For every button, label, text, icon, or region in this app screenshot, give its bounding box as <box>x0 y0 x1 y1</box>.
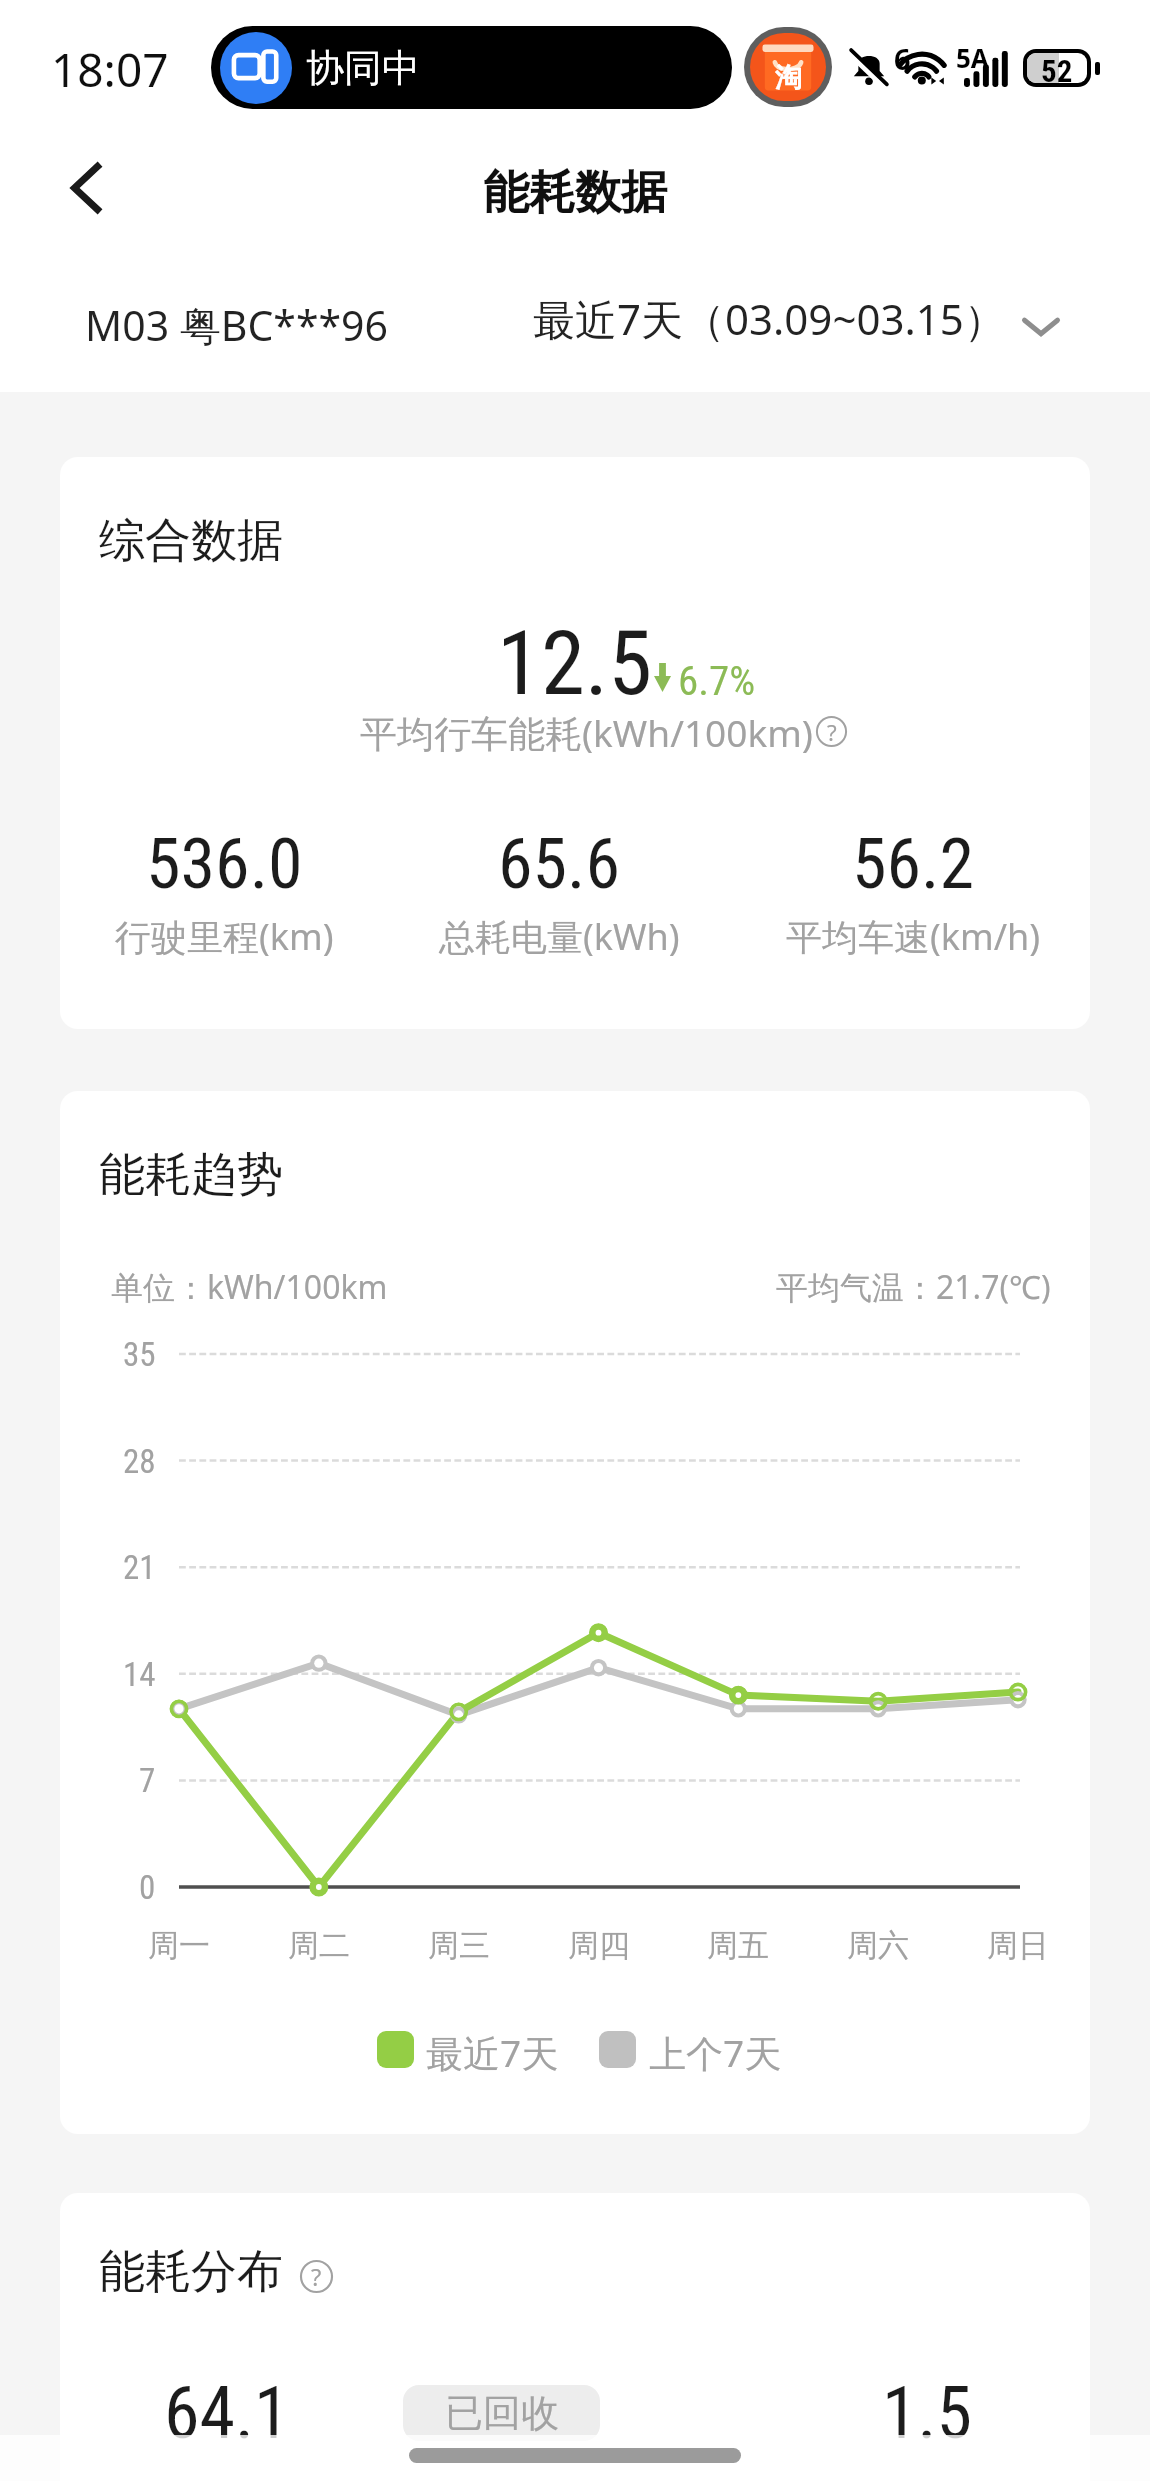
staticText: 5A <box>956 40 989 75</box>
staticText: 平均行车能耗(kWh/100km) <box>360 707 813 758</box>
staticText: 64.1 <box>164 2371 290 2455</box>
staticText: 周二 <box>288 1926 350 1965</box>
staticText: 周五 <box>707 1926 769 1965</box>
staticText: 上个7天 <box>649 2027 782 2078</box>
button[interactable]: Back <box>42 144 130 232</box>
staticText: 平均气温：21.7(℃) <box>776 1265 1051 1309</box>
staticText: 能耗数据 <box>483 164 667 222</box>
staticText: 7 <box>139 1761 156 1800</box>
staticText: ? <box>827 717 837 747</box>
staticText: 12.5 <box>497 611 653 715</box>
staticText: 行驶里程(km) <box>115 912 334 961</box>
staticText: 能耗分布 <box>99 2243 283 2301</box>
staticText: 平均车速(km/h) <box>786 912 1041 961</box>
staticText: 最近7天 <box>426 2027 559 2078</box>
staticText: 总耗电量(kWh) <box>439 912 680 961</box>
staticText: 35 <box>123 1335 156 1374</box>
staticText: 28 <box>123 1442 156 1481</box>
staticText: 0 <box>139 1868 156 1907</box>
staticText: 1.5 <box>882 2371 973 2455</box>
staticText: 综合数据 <box>99 512 283 570</box>
staticText: 周四 <box>568 1926 630 1965</box>
staticText: 52 <box>1041 53 1073 83</box>
button[interactable]: M03 粤BC***96 <box>85 297 388 353</box>
staticText: 最近7天（03.09~03.15） <box>533 290 1006 347</box>
staticText: 536.0 <box>146 823 303 905</box>
staticText: ? <box>311 2261 322 2293</box>
staticText: 6.7% <box>678 657 756 705</box>
staticText: 6 <box>894 39 911 78</box>
staticText: 周六 <box>847 1926 909 1965</box>
staticText: 65.6 <box>498 823 621 905</box>
staticText: 周一 <box>148 1926 210 1965</box>
staticText: 14 <box>123 1655 156 1694</box>
staticText: 周三 <box>428 1926 490 1965</box>
staticText: 淘 <box>775 61 802 95</box>
staticText: 单位：kWh/100km <box>111 1265 388 1309</box>
button[interactable]: 最近7天（03.09~03.15） <box>533 290 1060 347</box>
staticText: 56.2 <box>852 823 975 905</box>
staticText: 能耗趋势 <box>99 1146 283 1204</box>
staticText: 18:07 <box>51 38 169 101</box>
staticText: 周日 <box>987 1926 1049 1965</box>
staticText: 21 <box>123 1548 156 1587</box>
staticText: 协同中 <box>306 44 420 92</box>
staticText: 已回收 <box>445 2389 559 2437</box>
